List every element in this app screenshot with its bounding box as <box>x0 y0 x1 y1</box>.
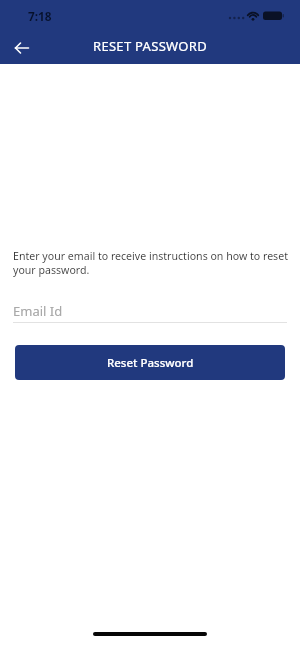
staticText: RESET PASSWORD <box>93 37 207 55</box>
button[interactable]: Email Id <box>13 302 287 323</box>
staticText: Enter your email to receive instructions… <box>13 249 288 277</box>
button[interactable]: Reset Password <box>15 345 285 380</box>
button[interactable] <box>4 30 40 66</box>
staticText: Reset Password <box>107 355 194 371</box>
staticText: Email Id <box>13 302 63 320</box>
staticText: 7:18 <box>28 8 52 24</box>
